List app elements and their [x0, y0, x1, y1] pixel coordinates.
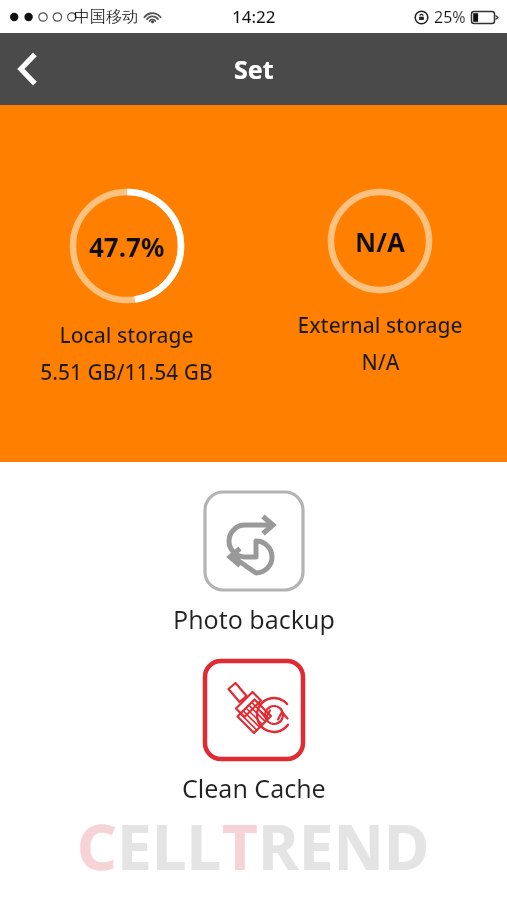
staticText: REND — [258, 804, 430, 888]
staticText: 5.51 GB/11.54 GB — [40, 358, 213, 387]
button[interactable]: Photo backup — [173, 486, 335, 636]
staticText: Set — [234, 52, 274, 86]
staticText: 25% — [434, 6, 466, 28]
staticText: T — [222, 804, 258, 888]
staticText: 中国移动 — [74, 7, 138, 27]
staticText: Local storage — [59, 321, 194, 350]
staticText: Photo backup — [173, 602, 335, 636]
button[interactable]: Clean Cache — [182, 655, 326, 805]
staticText: 47.7% — [89, 229, 165, 264]
staticText: N/A — [361, 348, 400, 377]
staticText: 14:22 — [232, 5, 276, 28]
staticText: C — [77, 804, 117, 888]
staticText: External storage — [297, 311, 463, 340]
staticText: ELL — [117, 804, 222, 888]
staticText: N/A — [355, 224, 405, 259]
staticText: Clean Cache — [182, 771, 326, 805]
button[interactable]: Back — [0, 42, 54, 96]
